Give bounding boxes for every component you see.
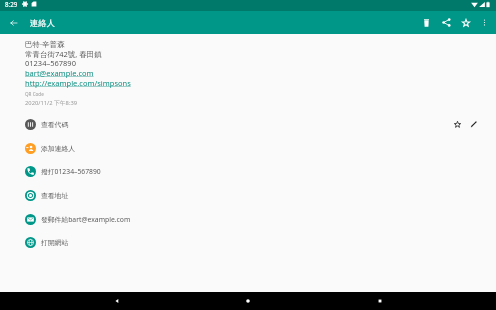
- button[interactable]: 查看代碼: [0, 112, 496, 136]
- staticText: QR Code: [25, 91, 44, 97]
- staticText: 連絡人: [30, 18, 55, 28]
- staticText: 巴特·辛普森: [25, 39, 65, 49]
- button[interactable]: Recents: [365, 292, 395, 310]
- staticText: 8:29: [5, 0, 18, 8]
- staticText: 撥打01234–567890: [41, 167, 101, 176]
- button[interactable]: Back: [102, 292, 132, 310]
- button[interactable]: 發郵件給bart@example.com: [0, 207, 496, 231]
- staticText: 添加連絡人: [41, 144, 75, 153]
- button[interactable]: Share: [436, 11, 456, 34]
- staticText: http://example.com/simpsons: [25, 78, 131, 88]
- button[interactable]: Delete: [416, 11, 436, 34]
- button[interactable]: Home: [233, 292, 263, 310]
- staticText: 2020/11/2 下午8:39: [25, 99, 78, 107]
- button[interactable]: 撥打01234–567890: [0, 159, 496, 183]
- staticText: 查看代碼: [41, 120, 69, 129]
- staticText: 打開網站: [41, 238, 69, 247]
- button[interactable]: 打開網站: [0, 230, 496, 254]
- button[interactable]: Favorite: [456, 11, 476, 34]
- button[interactable]: More options: [476, 11, 492, 34]
- button[interactable]: Favorite: [449, 116, 465, 132]
- button[interactable]: Edit: [466, 116, 482, 132]
- staticText: bart@example.com: [25, 68, 94, 78]
- staticText: 常青台街742號, 春田鎮: [25, 49, 102, 59]
- button[interactable]: 查看地址: [0, 183, 496, 207]
- staticText: 查看地址: [41, 191, 69, 200]
- staticText: 發郵件給bart@example.com: [41, 215, 131, 224]
- staticText: 01234–567890: [25, 58, 76, 68]
- button[interactable]: 添加連絡人: [0, 136, 496, 160]
- button[interactable]: Back: [4, 11, 24, 34]
